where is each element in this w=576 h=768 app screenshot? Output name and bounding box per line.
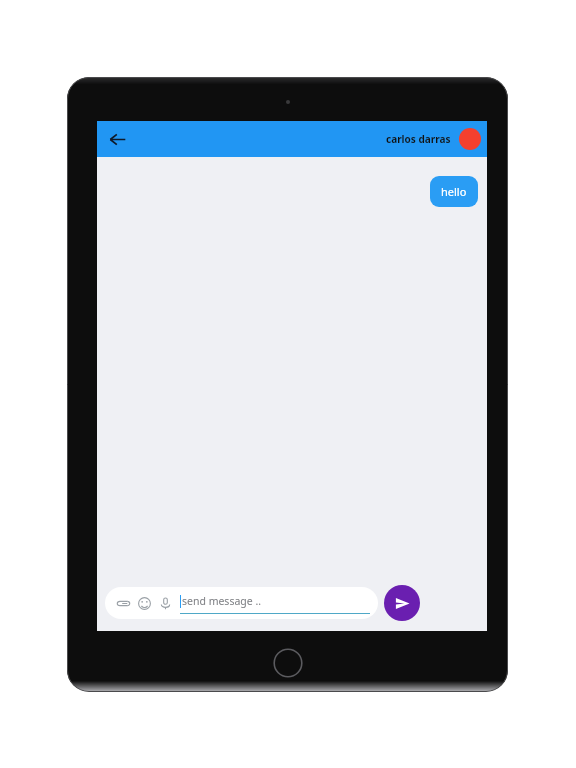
staticText: carlos darras — [386, 132, 451, 146]
staticText: send message .. — [182, 594, 262, 608]
staticText: hello — [441, 184, 467, 199]
button[interactable]: carlos darras — [386, 128, 481, 150]
button[interactable]: Send — [384, 585, 420, 621]
button[interactable]: Back — [101, 123, 133, 155]
button[interactable]: hello — [430, 176, 478, 207]
button[interactable]: send message .. — [105, 587, 378, 619]
other: Profile photo — [459, 128, 481, 150]
